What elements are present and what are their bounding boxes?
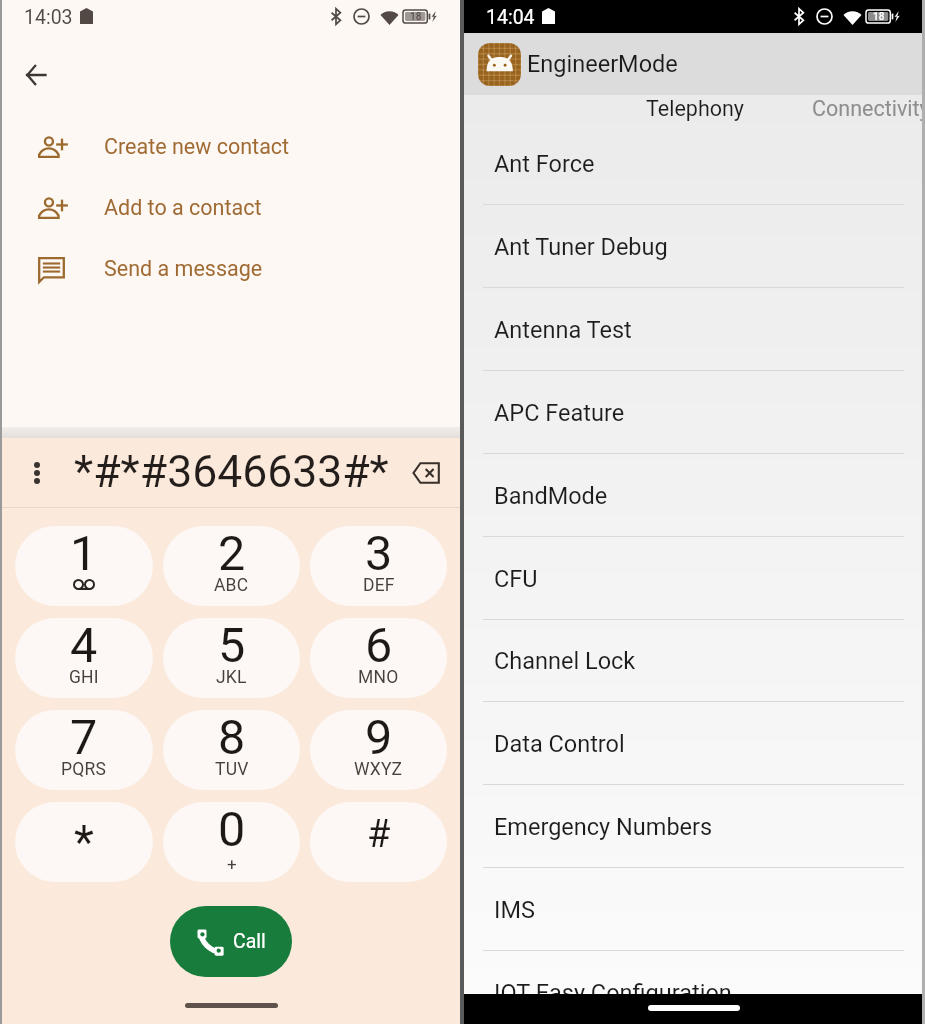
- button[interactable]: Data Control: [462, 702, 925, 785]
- button[interactable]: Channel Lock: [462, 619, 925, 702]
- staticText: Telephony: [646, 96, 745, 121]
- staticText: Channel Lock: [494, 647, 636, 675]
- button[interactable]: Create new contact: [0, 116, 462, 177]
- button[interactable]: Call: [170, 906, 292, 977]
- staticText: 8: [218, 710, 246, 766]
- staticText: 0: [218, 802, 246, 858]
- button[interactable]: 2: [163, 526, 300, 606]
- button[interactable]: Back: [13, 52, 59, 98]
- staticText: Antenna Test: [494, 316, 632, 344]
- staticText: GHI: [69, 667, 99, 688]
- button[interactable]: #: [310, 802, 447, 882]
- button[interactable]: 7: [15, 710, 153, 790]
- button[interactable]: 3: [310, 526, 447, 606]
- button[interactable]: Send a message: [0, 238, 462, 299]
- staticText: ABC: [214, 575, 249, 596]
- staticText: CFU: [494, 565, 538, 593]
- staticText: +: [227, 854, 237, 874]
- button[interactable]: APC Feature: [462, 371, 925, 454]
- button[interactable]: 8: [163, 710, 300, 790]
- staticText: PQRS: [61, 759, 107, 780]
- staticText: BandMode: [494, 482, 608, 510]
- staticText: JKL: [216, 667, 247, 688]
- staticText: 18: [410, 11, 422, 23]
- staticText: IMS: [494, 896, 535, 924]
- staticText: 4: [70, 618, 98, 674]
- staticText: 2: [218, 526, 246, 582]
- staticText: Send a message: [104, 256, 263, 281]
- button[interactable]: Backspace: [406, 453, 446, 493]
- button[interactable]: 4: [15, 618, 153, 698]
- staticText: *: [74, 815, 94, 869]
- button[interactable]: Antenna Test: [462, 288, 925, 371]
- staticText: 3: [365, 526, 393, 582]
- staticText: Add to a contact: [104, 195, 262, 220]
- staticText: EngineerMode: [527, 50, 678, 78]
- button[interactable]: IOT Easy Configuration: [462, 951, 925, 1024]
- staticText: DEF: [363, 575, 395, 596]
- staticText: Emergency Numbers: [494, 813, 713, 841]
- staticText: Ant Force: [494, 150, 595, 178]
- staticText: Create new contact: [104, 134, 290, 159]
- button[interactable]: Connectivity: [812, 96, 925, 121]
- button[interactable]: *: [15, 802, 153, 882]
- button[interactable]: Telephony: [646, 96, 745, 121]
- staticText: MNO: [358, 667, 399, 688]
- button[interactable]: More options: [18, 454, 56, 492]
- staticText: TUV: [215, 759, 249, 780]
- button[interactable]: Emergency Numbers: [462, 785, 925, 868]
- staticText: APC Feature: [494, 399, 625, 427]
- staticText: 9: [365, 710, 393, 766]
- staticText: Data Control: [494, 730, 625, 758]
- staticText: 14:04: [486, 6, 535, 29]
- staticText: 6: [365, 618, 393, 674]
- staticText: 7: [70, 710, 98, 766]
- button[interactable]: Ant Force: [462, 122, 925, 205]
- button[interactable]: Add to a contact: [0, 177, 462, 238]
- button[interactable]: 0: [163, 802, 300, 882]
- button[interactable]: 1: [15, 526, 153, 606]
- staticText: Connectivity: [812, 96, 925, 121]
- staticText: 1: [70, 526, 98, 582]
- staticText: #: [367, 812, 391, 857]
- button[interactable]: BandMode: [462, 454, 925, 537]
- staticText: 5: [218, 618, 246, 674]
- staticText: 18: [873, 11, 885, 23]
- staticText: Ant Tuner Debug: [494, 233, 668, 261]
- staticText: 14:03: [24, 6, 73, 29]
- staticText: IOT Easy Configuration: [494, 979, 732, 1007]
- button[interactable]: 6: [310, 618, 447, 698]
- staticText: Call: [233, 930, 266, 953]
- button[interactable]: CFU: [462, 537, 925, 620]
- button[interactable]: Ant Tuner Debug: [462, 205, 925, 288]
- button[interactable]: 5: [163, 618, 300, 698]
- button[interactable]: 9: [310, 710, 447, 790]
- staticText: *#*#3646633#*: [74, 446, 389, 498]
- staticText: WXYZ: [354, 759, 403, 780]
- button[interactable]: IMS: [462, 868, 925, 951]
